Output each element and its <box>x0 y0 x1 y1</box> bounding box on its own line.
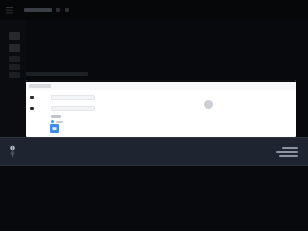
button[interactable] <box>276 151 298 153</box>
button[interactable]: Submit <box>50 124 59 133</box>
button[interactable] <box>279 155 298 157</box>
button[interactable]: Avatar <box>204 100 213 109</box>
button[interactable]: Menu <box>6 7 13 14</box>
button[interactable]: Logo <box>9 145 16 157</box>
button[interactable] <box>51 106 95 111</box>
button[interactable] <box>56 8 60 12</box>
button[interactable] <box>282 147 298 149</box>
button[interactable] <box>65 8 69 12</box>
button[interactable] <box>51 95 95 100</box>
